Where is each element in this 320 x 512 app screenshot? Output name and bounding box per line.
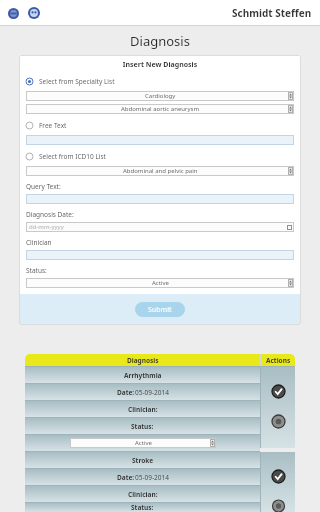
button[interactable]: Profile (28, 7, 40, 19)
staticText: Status: (131, 503, 154, 512)
button[interactable]: Submit (135, 302, 185, 317)
staticText: Diagnosis (0, 32, 320, 50)
staticText: Schmidt Steffen (232, 6, 312, 20)
staticText: 05-09-2014 (135, 388, 169, 397)
staticText: Abdominal aortic aneurysm (121, 105, 200, 113)
button[interactable]: Status: (25, 503, 260, 512)
staticText: Cardiology (145, 92, 176, 100)
button[interactable]: Select from ICD10 List (26, 152, 294, 161)
staticText: Active (152, 279, 169, 287)
button[interactable]: Date: (25, 469, 260, 485)
button[interactable]: dd-mm-yyyy (26, 222, 294, 232)
button[interactable] (26, 250, 294, 260)
button[interactable]: Arrhythmia (25, 367, 260, 383)
button[interactable]: Clinician: (25, 486, 260, 502)
staticText: Query Text: (26, 182, 61, 191)
staticText: Date: (117, 473, 135, 482)
button[interactable]: Abdominal and pelvic pain (26, 166, 294, 176)
button[interactable]: Abdominal aortic aneurysm (26, 104, 294, 114)
button[interactable]: Delete (272, 500, 285, 512)
button[interactable] (26, 135, 294, 145)
staticText: Status: (26, 266, 47, 275)
staticText: Arrhythmia (124, 371, 162, 380)
button[interactable]: Status: (25, 418, 260, 434)
staticText: Abdominal and pelvic pain (123, 167, 198, 175)
staticText: Clinician (26, 238, 52, 247)
staticText: dd-mm-yyyy (29, 223, 64, 231)
staticText: Select from Specialty List (39, 77, 115, 86)
button[interactable]: Clinician: (25, 401, 260, 417)
button[interactable]: Cardiology (26, 91, 294, 101)
staticText: Status: (131, 422, 154, 431)
staticText: Clinician: (128, 405, 158, 414)
staticText: Diagnosis (127, 356, 159, 365)
staticText: 05-09-2014 (135, 473, 169, 482)
staticText: Date: (117, 388, 135, 397)
staticText: Select from ICD10 List (39, 152, 106, 161)
button[interactable]: Stroke (25, 452, 260, 468)
button[interactable]: Confirm (272, 470, 285, 483)
staticText: Insert New Diagnosis (26, 60, 294, 70)
staticText: Free Text (39, 121, 67, 130)
staticText: Diagnosis Date: (26, 210, 74, 219)
staticText: Actions (266, 356, 291, 365)
button[interactable]: Active (26, 278, 294, 288)
button[interactable]: Confirm (272, 385, 285, 398)
button[interactable]: Free Text (26, 121, 294, 130)
staticText: Clinician: (128, 490, 158, 499)
button[interactable]: Diagnosis (25, 354, 260, 366)
button[interactable]: Delete (272, 415, 285, 428)
button[interactable]: Date: (25, 384, 260, 400)
button[interactable]: Select from Specialty List (26, 77, 294, 86)
staticText: Stroke (132, 456, 154, 465)
staticText: Active (135, 439, 152, 447)
button[interactable]: Menu (8, 8, 19, 19)
button[interactable]: Actions (261, 354, 295, 366)
button[interactable]: Active (70, 438, 216, 448)
staticText: Submit (148, 305, 172, 315)
button[interactable] (26, 194, 294, 204)
